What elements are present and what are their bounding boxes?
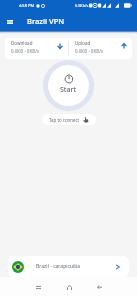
button[interactable]: Menu	[4, 16, 15, 27]
button[interactable]: Home	[62, 280, 76, 294]
staticText: 4:58 PM	[19, 3, 35, 8]
button[interactable]: Tap to connect	[42, 114, 96, 125]
button[interactable]: Brazil - carapicuiba	[8, 256, 129, 277]
button[interactable]: Start	[43, 60, 94, 111]
staticText: Upload	[75, 40, 91, 46]
staticText: Start	[60, 85, 77, 95]
staticText: Brazil VPN	[27, 16, 65, 26]
staticText: Tap to connect	[49, 117, 80, 123]
staticText: Download	[11, 40, 33, 46]
staticText: 0.0KB - 0KB/s	[75, 48, 103, 54]
button[interactable]: Recent apps	[31, 280, 45, 294]
button[interactable]: Back	[92, 280, 106, 294]
staticText: 6.5Kb/s	[75, 3, 89, 8]
staticText: 0.0KB - 0KB/s	[11, 48, 39, 54]
staticText: Brazil - carapicuiba	[36, 263, 81, 270]
